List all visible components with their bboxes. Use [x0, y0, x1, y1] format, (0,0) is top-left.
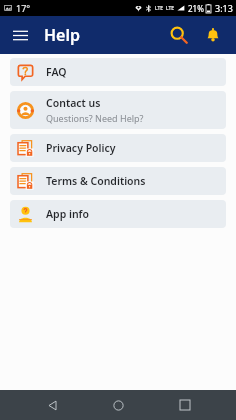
button[interactable]: App info	[10, 200, 226, 228]
button[interactable]: Recent apps	[170, 390, 200, 420]
staticText: 3:13	[215, 2, 233, 14]
staticText: Privacy Policy	[46, 141, 116, 155]
staticText: Terms & Conditions	[46, 174, 146, 188]
staticText: LTE	[166, 5, 175, 12]
staticText: 21%	[188, 3, 204, 14]
button[interactable]: Notifications	[198, 20, 228, 50]
button[interactable]: FAQ	[10, 58, 226, 86]
staticText: FAQ	[46, 65, 67, 79]
staticText: App info	[46, 207, 89, 221]
button[interactable]: Terms & Conditions	[10, 167, 226, 195]
button[interactable]: Search	[164, 20, 194, 50]
staticText: LTE	[155, 5, 164, 12]
button[interactable]: Contact us	[10, 91, 226, 129]
button[interactable]: Open navigation menu	[6, 21, 34, 49]
staticText: Questions? Need Help?	[46, 112, 144, 124]
staticText: 17°	[16, 2, 31, 14]
button[interactable]: Back	[37, 390, 67, 420]
button[interactable]: Home	[103, 390, 133, 420]
staticText: Contact us	[46, 96, 101, 110]
button[interactable]: Privacy Policy	[10, 134, 226, 162]
staticText: Help	[44, 24, 81, 46]
